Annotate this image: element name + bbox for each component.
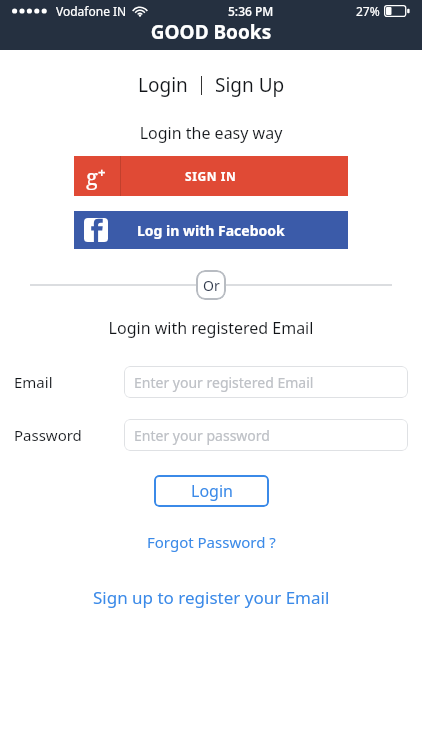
staticText: g (86, 161, 98, 191)
staticText: Enter your registered Email (134, 373, 314, 392)
button[interactable]: Login (154, 475, 269, 507)
button[interactable]: Login (130, 68, 196, 102)
staticText: + (98, 163, 106, 181)
staticText: Login with registered Email (0, 317, 422, 339)
staticText: Log in with Facebook (137, 221, 285, 240)
staticText: Vodafone IN (56, 3, 127, 19)
staticText: Login (191, 480, 233, 502)
button[interactable]: Enter your registered Email (124, 366, 408, 398)
button[interactable]: Log in with Facebook (74, 211, 348, 249)
staticText: Or (203, 276, 220, 295)
staticText: SIGN IN (185, 168, 237, 184)
staticText: Sign Up (215, 72, 285, 98)
staticText: Email (14, 372, 53, 392)
staticText: Login (138, 72, 188, 98)
button[interactable]: Sign Up (207, 68, 293, 102)
button[interactable]: Forgot Password ? (137, 529, 286, 555)
button[interactable]: Enter your password (124, 419, 408, 451)
staticText: Password (14, 425, 82, 445)
staticText: Login the easy way (0, 122, 422, 144)
button[interactable]: Sign up to register your Email (83, 583, 340, 612)
staticText: Forgot Password ? (147, 532, 276, 552)
staticText: GOOD Books (0, 19, 422, 45)
button[interactable]: SIGN IN (74, 156, 348, 196)
staticText: 5:36 PM (228, 3, 274, 19)
staticText: 27% (356, 3, 380, 19)
staticText: Enter your password (134, 426, 270, 445)
staticText: Sign up to register your Email (93, 586, 330, 609)
